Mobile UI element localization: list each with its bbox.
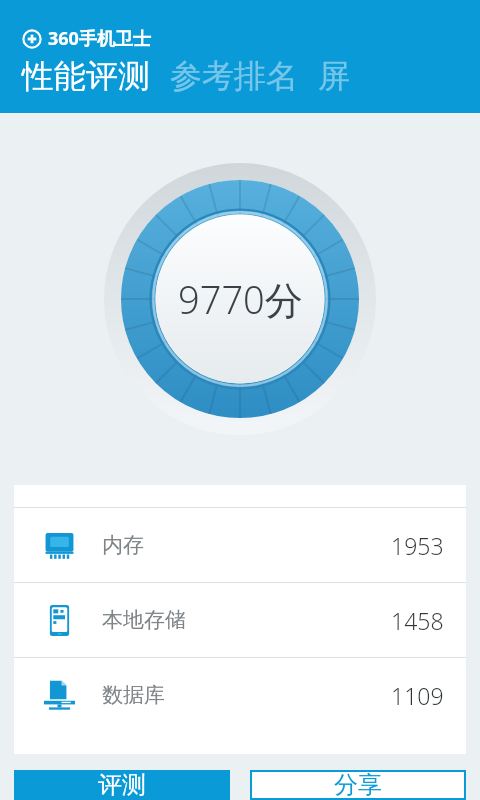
staticText: 1953 (391, 530, 444, 561)
staticText: 360手机卫士 (48, 26, 151, 51)
staticText: 性能评测 (22, 56, 150, 96)
staticText: 内存 (102, 532, 144, 558)
button[interactable]: 参考排名 (170, 56, 298, 96)
button[interactable]: 分享 (250, 770, 466, 800)
button[interactable]: 内存 (14, 508, 466, 582)
staticText: 9770分 (178, 273, 303, 325)
staticText: 评测 (98, 770, 146, 800)
staticText: 1109 (391, 680, 444, 711)
staticText: 分享 (334, 770, 382, 800)
staticText: 本地存储 (102, 607, 186, 633)
button[interactable]: 本地存储 (14, 583, 466, 657)
staticText: 参考排名 (170, 56, 298, 96)
button[interactable]: 屏 (318, 56, 350, 96)
staticText: 数据库 (102, 682, 165, 708)
button[interactable]: 性能评测 (22, 56, 150, 96)
button[interactable]: 评测 (14, 770, 230, 800)
button[interactable]: 数据库 (14, 658, 466, 732)
staticText: 1458 (391, 605, 444, 636)
other: 360 logo (22, 29, 42, 49)
staticText: 屏 (318, 56, 350, 96)
